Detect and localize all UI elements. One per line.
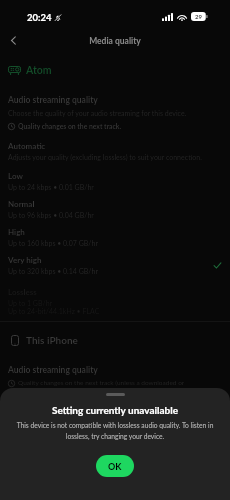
staticText: Audio streaming quality: [8, 95, 98, 105]
staticText: Up to 24-bit/44.1kHz • FLAC: [8, 307, 100, 315]
staticText: Atom: [26, 64, 52, 77]
staticText: Media quality: [0, 36, 230, 46]
staticText: 29: [195, 13, 202, 20]
button[interactable]: OK: [96, 455, 134, 477]
staticText: This device is not compatible with lossl…: [8, 421, 222, 441]
staticText: Low: [8, 171, 23, 181]
staticText: This iPhone: [26, 334, 78, 346]
staticText: Up to 96 kbps • 0.04 GB/hr: [8, 211, 94, 219]
button[interactable]: Normal: [0, 195, 230, 223]
staticText: Adjusts your quality (excluding lossless…: [8, 153, 202, 161]
staticText: Up to 24 kbps • 0.01 GB/hr: [8, 183, 94, 191]
button[interactable]: Low: [0, 167, 230, 195]
button[interactable]: Very high: [0, 251, 230, 279]
staticText: Automatic: [8, 141, 46, 151]
staticText: 20:24: [27, 12, 52, 23]
staticText: Very high: [8, 255, 42, 265]
staticText: Audio streaming quality: [8, 365, 98, 375]
staticText: Up to 320 kbps • 0.14 GB/hr: [8, 267, 98, 275]
staticText: Quality changes on the next track.: [18, 122, 122, 130]
button[interactable]: This iPhone: [11, 334, 78, 346]
staticText: Choose the quality of your audio streami…: [8, 109, 187, 117]
staticText: High: [8, 227, 25, 237]
staticText: Lossless: [8, 287, 37, 297]
button[interactable]: Atom: [8, 64, 52, 77]
staticText: Quality changes on the next track (unles…: [18, 379, 185, 387]
staticText: OK: [108, 461, 122, 472]
button[interactable]: High: [0, 223, 230, 251]
button[interactable]: Automatic: [0, 137, 230, 165]
staticText: Normal: [8, 199, 35, 209]
staticText: Setting currently unavailable: [0, 404, 230, 416]
button[interactable]: Back: [4, 31, 22, 49]
staticText: Up to 160 kbps • 0.07 GB/hr: [8, 239, 98, 247]
staticText: Up to 1 GB/hr: [8, 299, 53, 307]
